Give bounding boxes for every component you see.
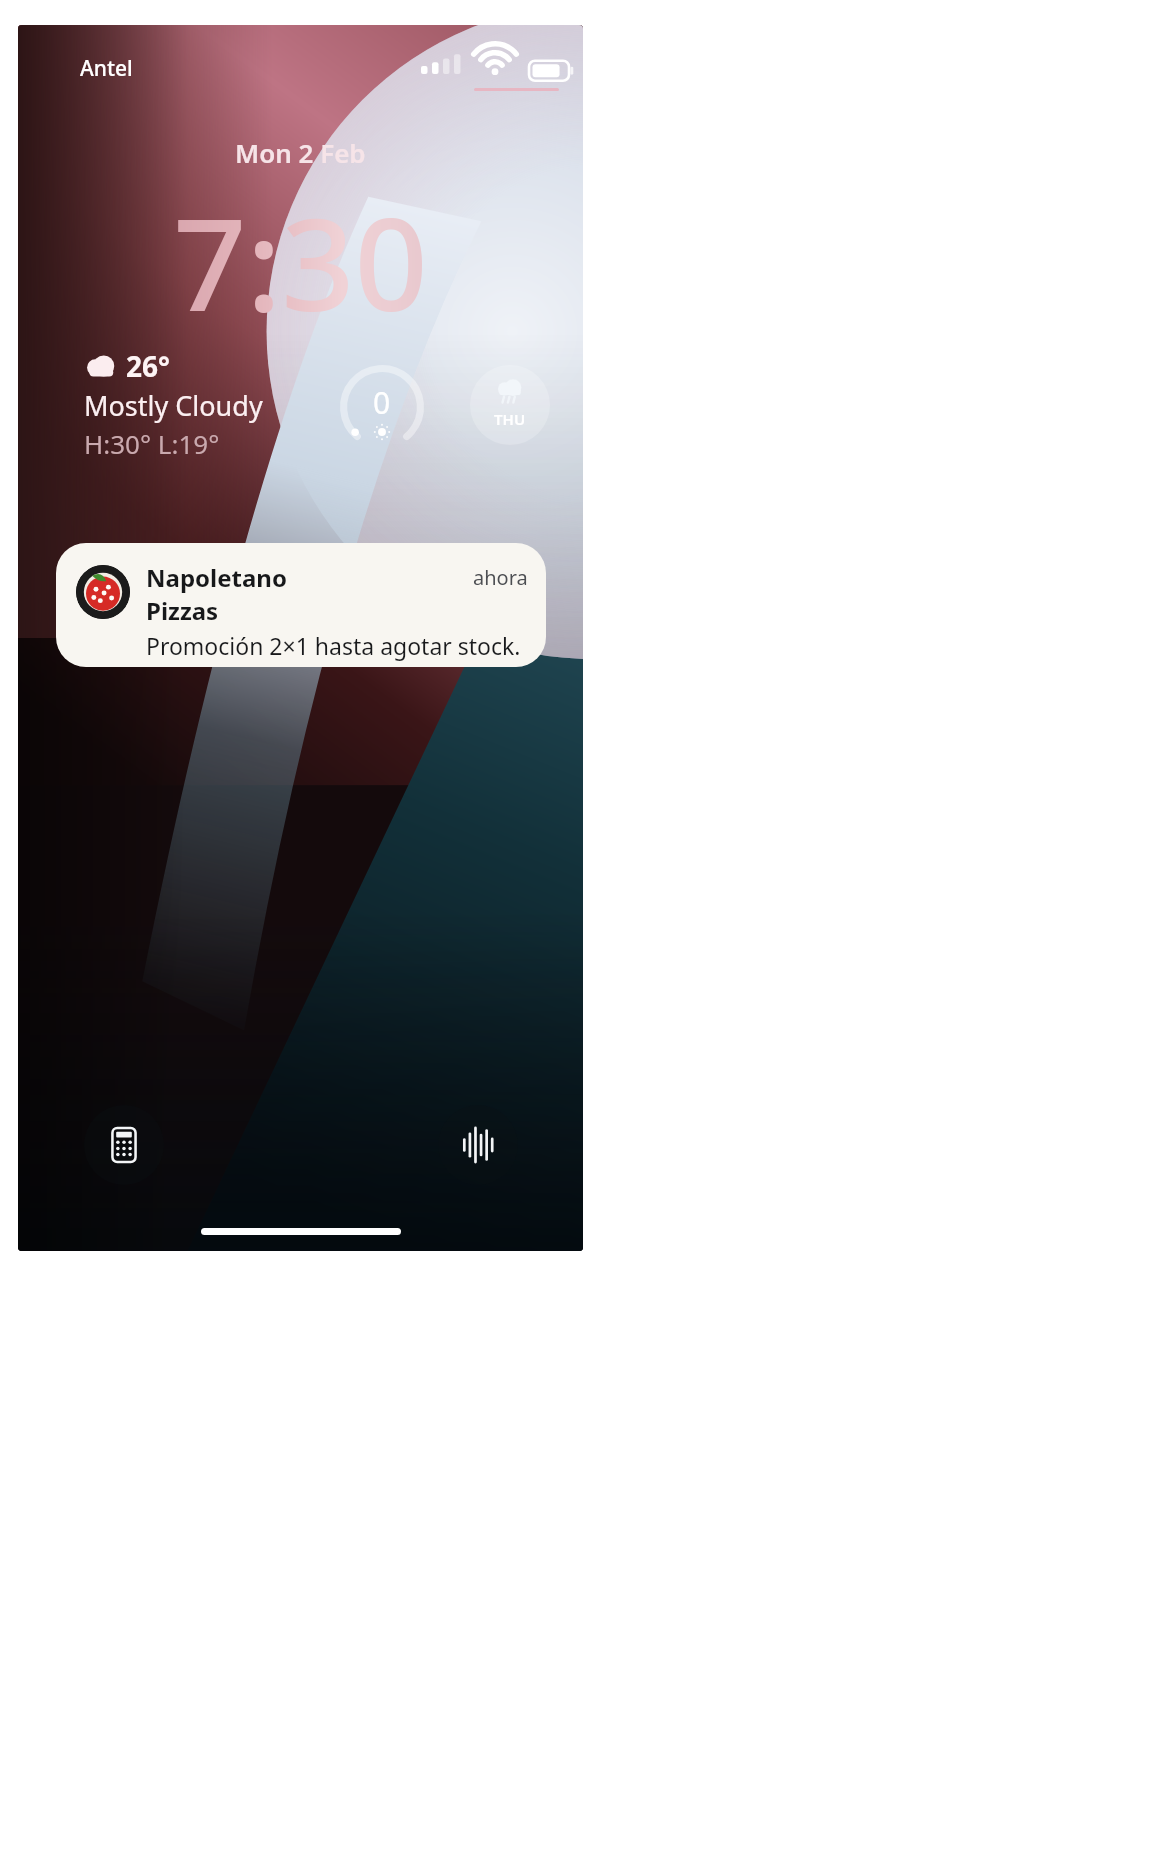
- staticText: Mostly Cloudy: [84, 387, 263, 424]
- staticText: 7:30: [173, 174, 428, 348]
- staticText: Mon 2 Feb: [235, 135, 366, 170]
- staticText: ahora: [473, 564, 528, 591]
- staticText: H:30° L:19°: [84, 426, 220, 461]
- staticText: THU: [494, 409, 526, 429]
- staticText: Napoletano Pizzas: [146, 561, 309, 627]
- staticText: Promoción 2×1 hasta agotar stock. Apurat…: [146, 630, 528, 667]
- button[interactable]: Napoletano Pizzas: [56, 543, 546, 667]
- button[interactable]: UV index: [340, 365, 424, 449]
- staticText: 26°: [126, 347, 170, 385]
- button[interactable]: Calculator: [84, 1105, 164, 1185]
- staticText: Antel: [80, 54, 133, 83]
- staticText: 0: [373, 382, 391, 423]
- button[interactable]: Thursday forecast: [470, 365, 550, 445]
- button[interactable]: Voice memo: [438, 1105, 518, 1185]
